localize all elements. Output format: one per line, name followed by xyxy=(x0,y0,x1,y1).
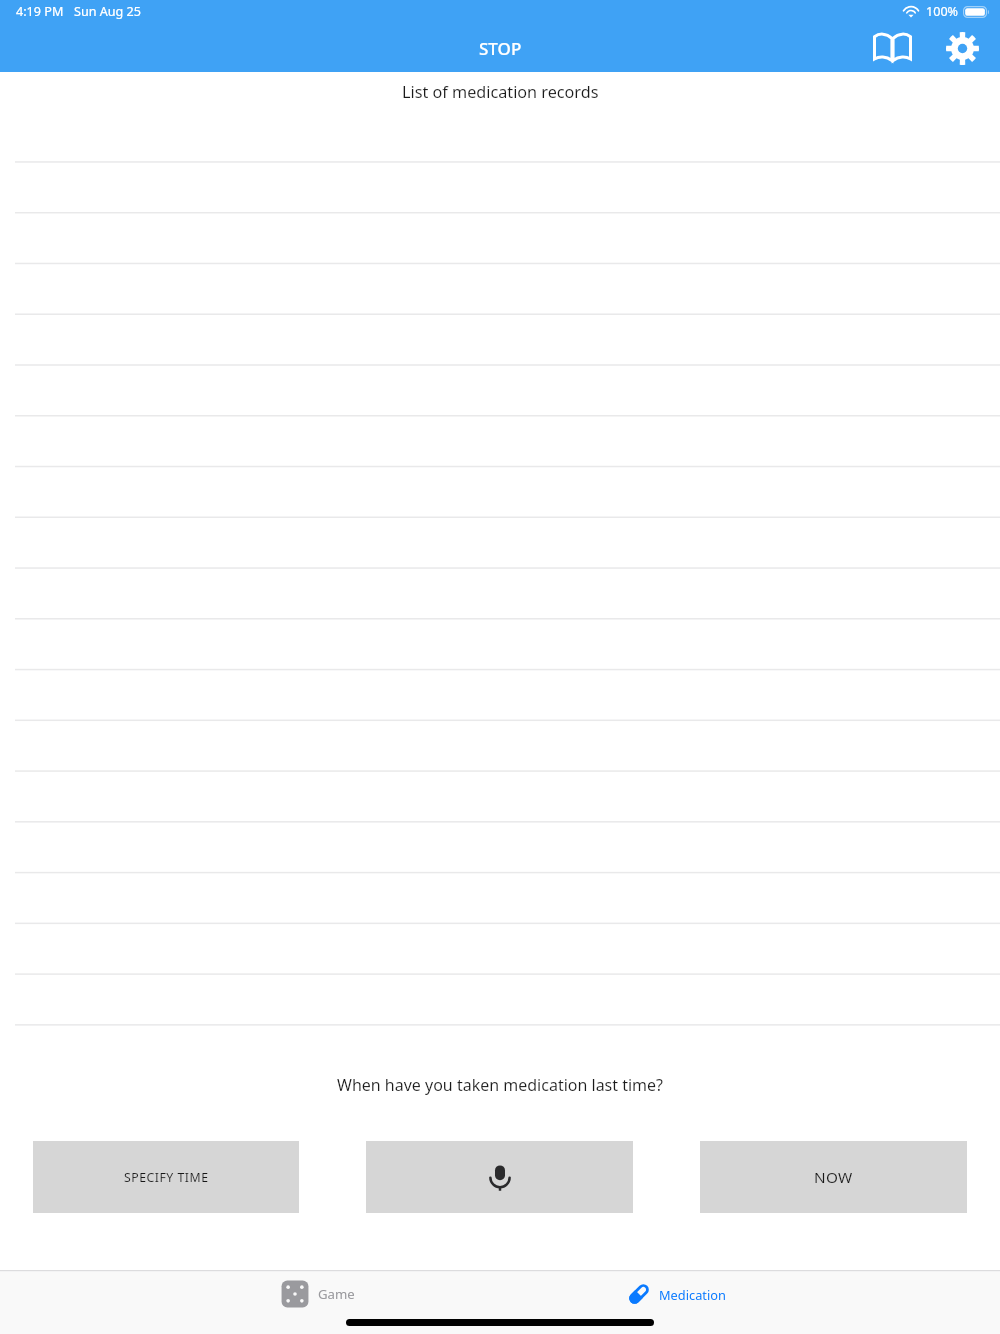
button[interactable]: SPECIFY TIME xyxy=(33,1141,299,1213)
staticText: List of medication records xyxy=(402,81,599,103)
staticText: SPECIFY TIME xyxy=(124,1169,209,1186)
button[interactable]: Guide xyxy=(870,26,914,70)
staticText: Game xyxy=(318,1285,355,1303)
staticText: 4:19 PM xyxy=(16,3,64,20)
button[interactable]: Medication xyxy=(500,1270,859,1318)
button[interactable]: Game xyxy=(141,1270,500,1318)
button[interactable]: Voice input xyxy=(366,1141,633,1213)
staticText: When have you taken medication last time… xyxy=(337,1074,664,1096)
staticText: Sun Aug 25 xyxy=(74,3,142,20)
button[interactable]: STOP xyxy=(467,33,534,64)
staticText: STOP xyxy=(479,37,522,60)
staticText: Medication xyxy=(659,1286,726,1303)
button[interactable]: NOW xyxy=(700,1141,967,1213)
staticText: 100% xyxy=(926,3,959,20)
staticText: NOW xyxy=(814,1167,853,1188)
button[interactable]: Settings xyxy=(940,26,984,70)
